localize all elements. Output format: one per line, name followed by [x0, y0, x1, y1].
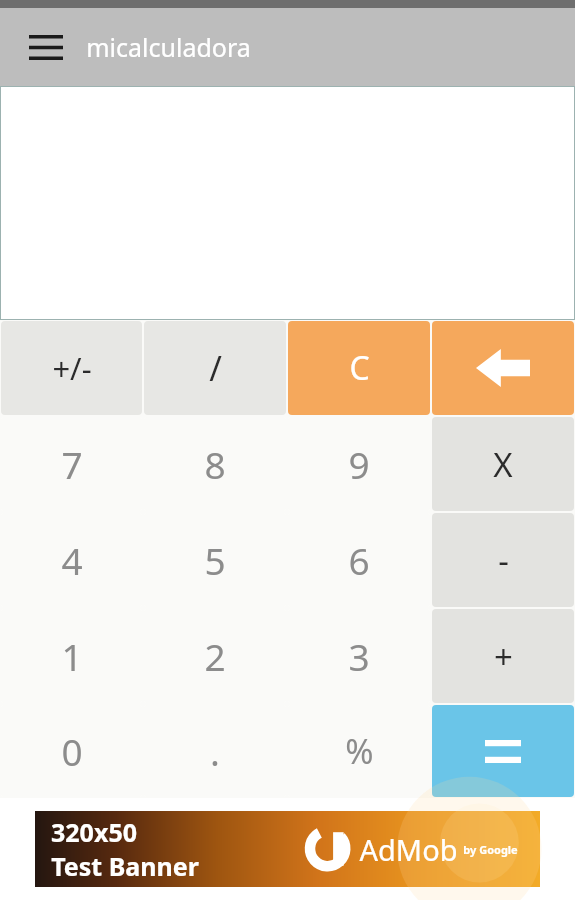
staticText: by Google: [463, 842, 518, 857]
staticText: 7: [61, 439, 83, 489]
button[interactable]: /: [144, 321, 286, 415]
staticText: AdMob: [359, 830, 458, 869]
button[interactable]: 8: [144, 417, 286, 511]
button[interactable]: 9: [288, 417, 430, 511]
button[interactable]: 7: [1, 417, 142, 511]
staticText: 4: [61, 535, 83, 585]
staticText: +/-: [52, 347, 92, 389]
staticText: 320x50: [51, 815, 137, 849]
button[interactable]: Open navigation menu: [20, 21, 72, 73]
button[interactable]: 2: [144, 609, 286, 703]
staticText: 2: [204, 631, 226, 681]
button[interactable]: Equals: [432, 705, 574, 797]
button[interactable]: Advertisement banner: [35, 811, 540, 887]
button[interactable]: X: [432, 417, 574, 511]
staticText: 1: [61, 631, 83, 681]
button[interactable]: 1: [1, 609, 142, 703]
button[interactable]: .: [144, 705, 286, 797]
button[interactable]: 4: [1, 513, 142, 607]
button[interactable]: 5: [144, 513, 286, 607]
staticText: +: [494, 634, 513, 679]
button[interactable]: 6: [288, 513, 430, 607]
staticText: /: [209, 345, 222, 391]
button[interactable]: 3: [288, 609, 430, 703]
button[interactable]: %: [288, 705, 430, 797]
button[interactable]: Backspace: [432, 321, 574, 415]
button[interactable]: +: [432, 609, 574, 703]
staticText: C: [349, 346, 370, 390]
staticText: 6: [348, 535, 370, 585]
staticText: 5: [204, 535, 226, 585]
button[interactable]: -: [432, 513, 574, 607]
button[interactable]: 0: [1, 705, 142, 797]
staticText: %: [345, 728, 374, 774]
staticText: 0: [61, 726, 83, 776]
staticText: micalculadora: [86, 30, 251, 64]
staticText: 3: [348, 631, 370, 681]
staticText: .: [210, 726, 220, 776]
button[interactable]: C: [288, 321, 430, 415]
staticText: 8: [204, 439, 226, 489]
staticText: -: [498, 538, 509, 583]
staticText: 9: [348, 439, 370, 489]
staticText: X: [493, 442, 513, 487]
staticText: Test Banner: [51, 849, 199, 883]
button[interactable]: +/-: [1, 321, 142, 415]
